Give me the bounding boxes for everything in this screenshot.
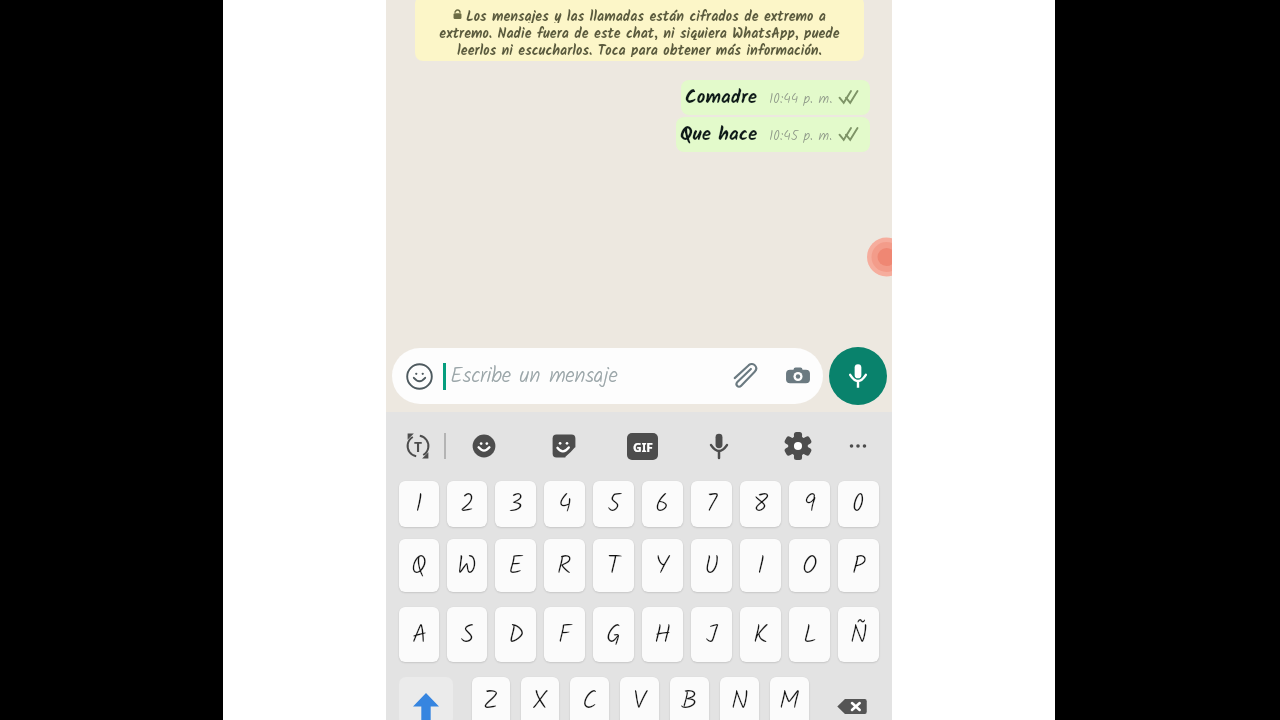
staticText: 1: [415, 484, 424, 524]
button[interactable]: D: [495, 607, 536, 662]
button[interactable]: Y: [642, 539, 683, 592]
button[interactable]: Comadre: [681, 80, 870, 115]
button[interactable]: L: [789, 607, 830, 662]
button[interactable]: F: [544, 607, 585, 662]
button[interactable]: Stickers: [549, 431, 579, 461]
staticText: H: [654, 615, 672, 655]
staticText: 2: [460, 484, 475, 524]
staticText: L: [803, 615, 817, 655]
button[interactable]: Emoji: [392, 348, 823, 404]
staticText: 6: [655, 484, 670, 524]
button[interactable]: X: [521, 677, 559, 720]
staticText: GIF: [633, 439, 653, 455]
button[interactable]: 0: [838, 481, 879, 527]
staticText: N: [731, 681, 749, 720]
button[interactable]: Q: [399, 539, 439, 592]
staticText: Ñ: [850, 615, 868, 655]
button[interactable]: S: [447, 607, 487, 662]
button[interactable]: 1: [399, 481, 439, 527]
button[interactable]: U: [691, 539, 732, 592]
staticText: E: [508, 546, 524, 586]
staticText: Y: [655, 546, 670, 586]
button[interactable]: K: [740, 607, 781, 662]
button[interactable]: More options: [840, 428, 876, 464]
staticText: 0: [852, 484, 865, 524]
staticText: 7: [706, 484, 718, 524]
staticText: 5: [607, 484, 621, 524]
staticText: J: [706, 615, 718, 655]
staticText: T: [607, 546, 621, 586]
button[interactable]: 2: [447, 481, 487, 527]
button[interactable]: 4: [544, 481, 585, 527]
button[interactable]: 9: [789, 481, 830, 527]
staticText: X: [532, 681, 549, 720]
button[interactable]: Voice input: [704, 431, 734, 461]
staticText: 3: [508, 484, 523, 524]
staticText: W: [457, 546, 477, 586]
button[interactable]: Emoji: [469, 431, 499, 461]
button[interactable]: 5: [593, 481, 634, 527]
staticText: Los mensajes y las llamadas están cifrad…: [466, 6, 826, 23]
button[interactable]: GIF: [627, 433, 658, 460]
staticText: D: [508, 615, 524, 655]
staticText: V: [633, 681, 647, 720]
button[interactable]: 6: [642, 481, 683, 527]
staticText: extremo. Nadie fuera de este chat, ni si…: [439, 23, 840, 40]
button[interactable]: J: [691, 607, 732, 662]
other: Camera: [785, 363, 811, 389]
staticText: Comadre: [685, 83, 758, 113]
button[interactable]: Voice message: [829, 347, 887, 405]
staticText: M: [779, 681, 800, 720]
other: Emoji: [406, 363, 433, 390]
button[interactable]: I: [740, 539, 781, 592]
staticText: 4: [558, 484, 572, 524]
button[interactable]: O: [789, 539, 830, 592]
staticText: I: [757, 546, 765, 586]
staticText: A: [412, 615, 427, 655]
button[interactable]: N: [720, 677, 759, 720]
staticText: G: [606, 615, 622, 655]
button[interactable]: Backspace: [825, 677, 879, 720]
button[interactable]: E: [495, 539, 536, 592]
staticText: 8: [753, 484, 769, 524]
staticText: R: [557, 546, 572, 586]
staticText: F: [558, 615, 571, 655]
button[interactable]: W: [447, 539, 487, 592]
button[interactable]: G: [593, 607, 634, 662]
staticText: leerlos ni escucharlos. Toca para obtene…: [457, 40, 822, 57]
button[interactable]: V: [620, 677, 659, 720]
staticText: T: [414, 437, 423, 456]
staticText: Q: [411, 546, 427, 586]
button[interactable]: 8: [740, 481, 781, 527]
button[interactable]: P: [838, 539, 879, 592]
staticText: P: [852, 546, 866, 586]
button[interactable]: Translate: [405, 433, 431, 459]
button[interactable]: Los mensajes y las llamadas están cifrad…: [415, 0, 864, 61]
staticText: K: [753, 615, 768, 655]
staticText: O: [802, 546, 818, 586]
button[interactable]: C: [570, 677, 609, 720]
staticText: 9: [804, 484, 816, 524]
button[interactable]: Que hace: [676, 117, 870, 152]
button[interactable]: Z: [472, 677, 510, 720]
button[interactable]: H: [642, 607, 683, 662]
staticText: Que hace: [680, 120, 758, 150]
other: Attach: [732, 363, 759, 390]
button[interactable]: M: [770, 677, 809, 720]
button[interactable]: R: [544, 539, 585, 592]
button[interactable]: T: [593, 539, 634, 592]
staticText: Escribe un mensaje: [450, 360, 618, 393]
staticText: 10:45 p. m.: [769, 126, 833, 148]
button[interactable]: 3: [495, 481, 536, 527]
button[interactable]: Settings: [783, 431, 813, 461]
staticText: S: [461, 615, 474, 655]
button[interactable]: A: [399, 607, 439, 662]
staticText: C: [582, 681, 597, 720]
button[interactable]: Shift: [399, 677, 453, 720]
staticText: 10:44 p. m.: [769, 89, 833, 111]
staticText: B: [681, 681, 698, 720]
button[interactable]: B: [670, 677, 709, 720]
staticText: Z: [483, 681, 499, 720]
button[interactable]: 7: [691, 481, 732, 527]
button[interactable]: Ñ: [838, 607, 879, 662]
